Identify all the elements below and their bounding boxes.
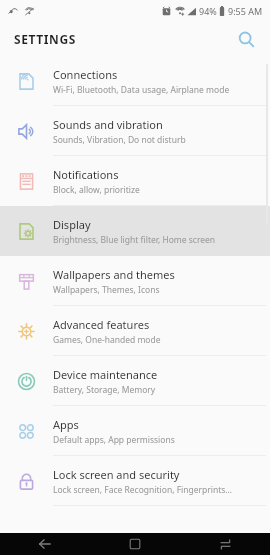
staticText: 9:55 AM [228,5,263,17]
staticText: Device maintenance [53,367,158,382]
staticText: Sounds and vibration [53,117,163,132]
button[interactable]: Connections [0,56,270,106]
staticText: Default apps, App permissions [53,434,175,446]
button[interactable]: Sounds and vibration [0,106,270,156]
staticText: Games, One-handed mode [53,334,161,346]
button[interactable]: Search [232,25,260,53]
staticText: Battery, Storage, Memory [53,384,156,396]
staticText: Lock screen and security [53,467,180,482]
button[interactable]: Display [0,206,270,256]
staticText: SETTINGS [14,31,76,47]
staticText: Block, allow, prioritize [53,184,140,196]
staticText: Connections [53,67,118,82]
staticText: Lock screen, Face Recognition, Fingerpri… [53,484,233,496]
staticText: Apps [53,417,79,432]
staticText: Wallpapers and themes [53,267,175,282]
button[interactable]: Wallpapers and themes [0,256,270,306]
button[interactable]: Recent apps [180,533,270,555]
button[interactable]: Lock screen and security [0,456,270,506]
button[interactable]: Device maintenance [0,356,270,406]
staticText: Wi-Fi, Bluetooth, Data usage, Airplane m… [53,84,230,96]
staticText: Brightness, Blue light filter, Home scre… [53,234,216,246]
staticText: Advanced features [53,317,150,332]
button[interactable]: Notifications [0,156,270,206]
staticText: Wallpapers, Themes, Icons [53,284,160,296]
button[interactable]: Back [0,533,90,555]
button[interactable]: Advanced features [0,306,270,356]
staticText: 94% [199,5,217,17]
staticText: Display [53,217,91,232]
staticText: Notifications [53,167,119,182]
button[interactable]: Home [90,533,180,555]
staticText: Sounds, Vibration, Do not disturb [53,134,186,146]
button[interactable]: Apps [0,406,270,456]
